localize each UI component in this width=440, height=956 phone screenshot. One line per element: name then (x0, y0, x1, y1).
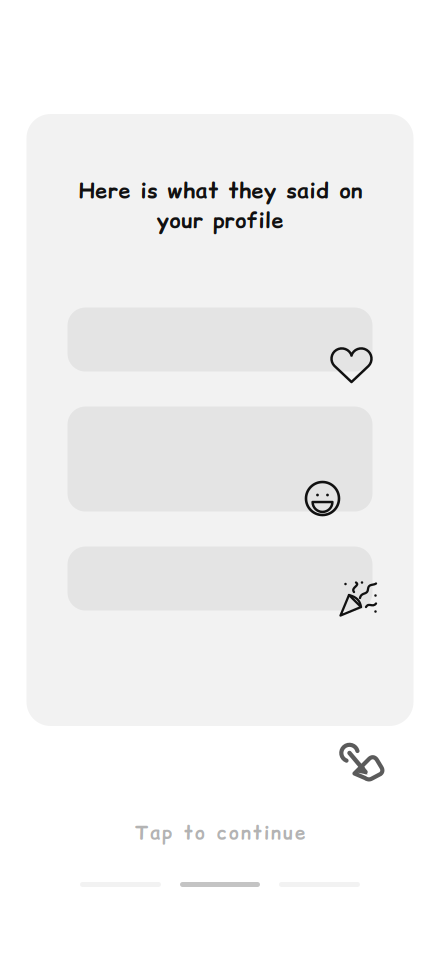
button[interactable]: Tap to continue (135, 820, 305, 846)
staticText: Here is what they said on your profile (78, 176, 362, 235)
staticText: Tap to continue (135, 820, 305, 846)
button[interactable]: Tap to continue (336, 739, 388, 783)
